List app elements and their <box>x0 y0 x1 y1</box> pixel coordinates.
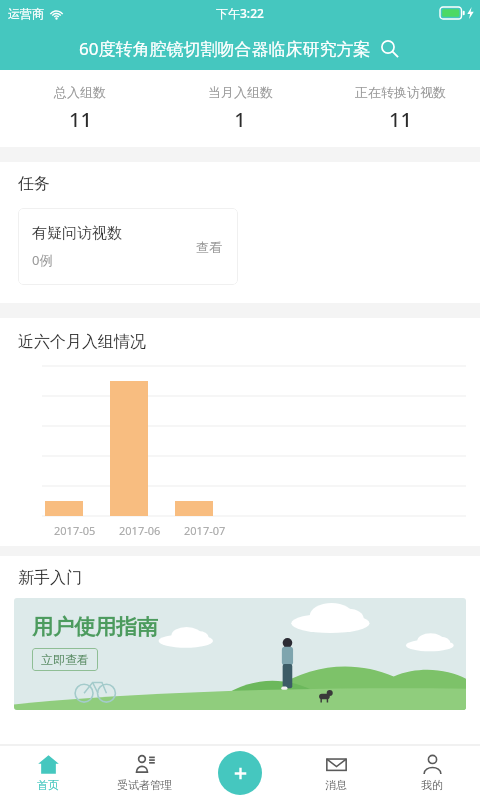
staticText: 60度转角腔镜切割吻合器临床研究方案 <box>79 37 371 60</box>
staticText: 2017-05 <box>54 523 96 538</box>
button[interactable]: 有疑问访视数 <box>18 208 238 285</box>
button[interactable]: 受试者管理 <box>96 745 192 800</box>
button[interactable]: 正在转换访视数 <box>320 70 480 147</box>
button[interactable]: 消息 <box>288 745 384 800</box>
staticText: 用户使用指南 <box>32 614 158 640</box>
staticText: 下午3:22 <box>216 5 264 21</box>
staticText: 运营商 <box>8 6 44 21</box>
staticText: 2017-06 <box>119 523 161 538</box>
button[interactable]: 首页 <box>0 745 96 800</box>
staticText: 正在转换访视数 <box>355 84 446 100</box>
staticText: 查看 <box>196 239 222 255</box>
button[interactable]: Search <box>376 35 402 61</box>
staticText: 1 <box>234 106 246 133</box>
button[interactable]: 用户使用指南 <box>14 598 466 710</box>
staticText: 消息 <box>325 778 347 792</box>
staticText: 首页 <box>37 778 59 792</box>
staticText: 我的 <box>421 778 443 792</box>
staticText: 近六个月入组情况 <box>18 332 146 352</box>
staticText: 有疑问访视数 <box>32 224 122 243</box>
button[interactable]: 当月入组数 <box>160 70 320 147</box>
staticText: 受试者管理 <box>117 778 172 792</box>
staticText: 0例 <box>32 251 53 269</box>
staticText: 新手入门 <box>18 568 82 588</box>
staticText: 总入组数 <box>54 84 106 100</box>
staticText: 2017-07 <box>184 523 226 538</box>
staticText: 11 <box>389 106 412 133</box>
button[interactable]: 我的 <box>384 745 480 800</box>
staticText: 任务 <box>18 174 50 194</box>
button[interactable]: 总入组数 <box>0 70 160 147</box>
button[interactable]: Add <box>218 751 262 795</box>
staticText: 当月入组数 <box>208 84 273 100</box>
staticText: 立即查看 <box>41 652 89 667</box>
staticText: 11 <box>69 106 92 133</box>
